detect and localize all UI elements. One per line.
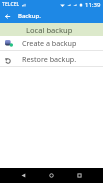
button[interactable]: Navigate up [0, 9, 15, 23]
staticText: TELCEL [2, 1, 20, 8]
staticText: 11:39 [85, 1, 101, 9]
staticText: Backup. [18, 12, 41, 20]
button[interactable]: Create a backup [0, 36, 103, 50]
button[interactable]: Home [37, 168, 65, 183]
button[interactable]: Restore backup. [0, 51, 103, 66]
staticText: Local backup [26, 25, 73, 35]
button[interactable]: Back [9, 168, 37, 183]
staticText: Restore backup. [22, 54, 77, 64]
button[interactable]: Recent apps [65, 168, 93, 183]
staticText: Create a backup [22, 38, 77, 48]
